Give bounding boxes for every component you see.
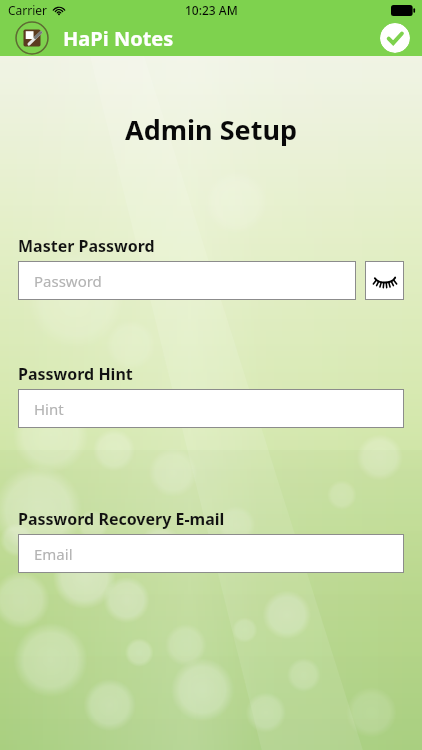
- staticText: Carrier: [8, 2, 48, 18]
- button[interactable]: Password: [18, 261, 356, 300]
- staticText: HaPi Notes: [63, 25, 174, 52]
- staticText: Password Hint: [18, 363, 133, 385]
- button[interactable]: Email: [18, 534, 404, 573]
- staticText: Admin Setup: [0, 111, 422, 148]
- button[interactable]: Save: [380, 23, 410, 53]
- staticText: Email: [34, 544, 73, 564]
- staticText: Password: [34, 271, 102, 291]
- button[interactable]: HaPi Notes logo: [14, 20, 50, 56]
- staticText: Password Recovery E-mail: [18, 508, 225, 530]
- staticText: Master Password: [18, 235, 155, 257]
- staticText: 10:23 AM: [185, 2, 238, 18]
- staticText: Hint: [34, 399, 64, 419]
- button[interactable]: Hint: [18, 389, 404, 428]
- button[interactable]: Show password: [365, 261, 404, 300]
